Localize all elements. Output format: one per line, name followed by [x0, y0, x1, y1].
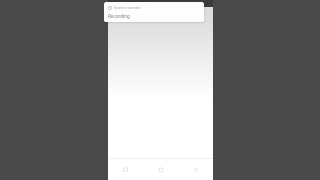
staticText: 00:00:05 Recording: [110, 1, 149, 7]
staticText: Recording: [108, 13, 130, 19]
staticText: Screen recorder: [114, 5, 141, 10]
button[interactable]: Screen recorder: [104, 2, 204, 22]
